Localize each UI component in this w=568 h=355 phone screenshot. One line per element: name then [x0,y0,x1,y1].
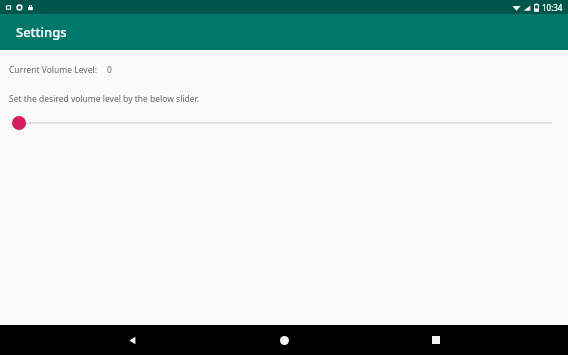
staticText: 0 [107,64,112,76]
button[interactable]: ACTIVATE [199,330,370,353]
button[interactable]: Volume level slider [0,115,568,131]
staticText: Set the desired volume level by the belo… [9,93,200,105]
button[interactable]: Home [264,325,304,355]
staticText: Current Volume Level: [9,64,97,76]
button[interactable]: Recent apps [416,325,456,355]
staticText: Settings [16,23,67,41]
staticText: 10:34 [542,2,563,13]
staticText: ACTIVATE [262,336,307,348]
button[interactable]: Back [112,325,152,355]
